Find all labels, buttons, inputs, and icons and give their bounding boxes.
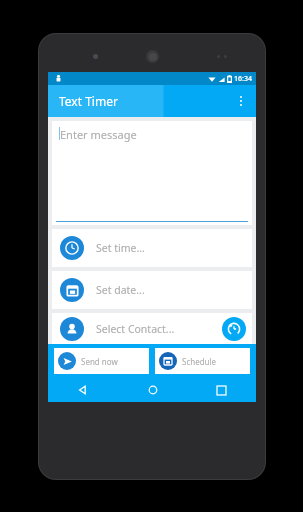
staticText: Enter message xyxy=(60,127,137,142)
staticText: Send now xyxy=(81,356,118,367)
staticText: Set date... xyxy=(96,283,145,297)
button[interactable]: Recent apps xyxy=(187,378,256,402)
button[interactable]: Recent contacts xyxy=(222,317,246,341)
button[interactable]: Set date... xyxy=(52,271,252,309)
button[interactable]: Send now xyxy=(54,348,149,374)
staticText: Schedule xyxy=(182,356,217,367)
staticText: Text Timer xyxy=(59,93,118,109)
button[interactable]: Select Contact... xyxy=(52,313,252,344)
button[interactable]: Back xyxy=(48,378,118,402)
staticText: Select Contact... xyxy=(96,322,175,336)
button[interactable]: Enter message xyxy=(52,121,252,225)
button[interactable]: Home xyxy=(118,378,187,402)
button[interactable]: More options xyxy=(226,86,256,116)
button[interactable]: Schedule xyxy=(155,348,250,374)
button[interactable]: Set time... xyxy=(52,229,252,267)
staticText: 16:34 xyxy=(234,74,252,84)
staticText: Set time... xyxy=(96,241,145,255)
